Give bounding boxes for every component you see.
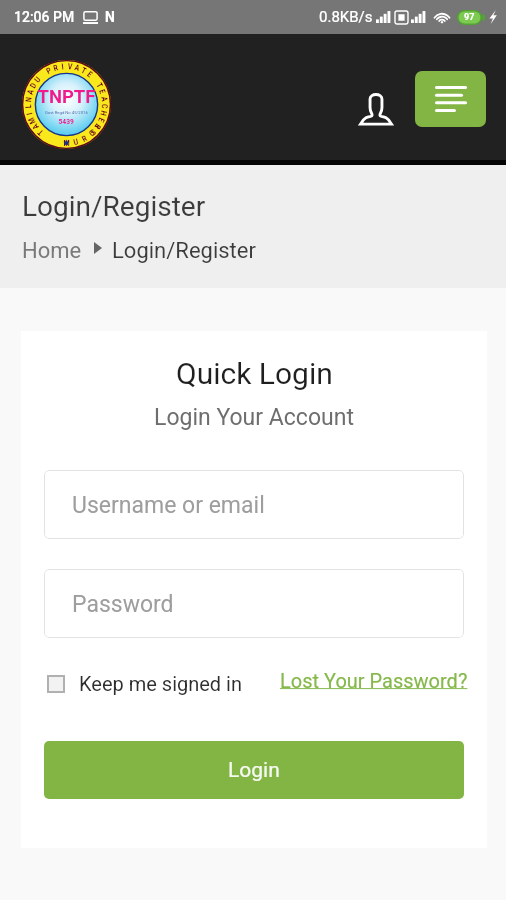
staticText: 12:06 PM xyxy=(14,9,75,25)
staticText: Username or email xyxy=(72,492,265,519)
button[interactable]: Keep me signed in xyxy=(47,672,243,695)
staticText: Login/Register xyxy=(112,238,256,264)
button[interactable]: Username or email xyxy=(44,470,464,539)
button[interactable]: Home xyxy=(22,238,82,264)
staticText: Login Your Account xyxy=(154,404,354,431)
button[interactable]: Lost Your Password? xyxy=(280,669,468,692)
button[interactable]: TNPTF Home xyxy=(22,60,111,149)
staticText: Login/Register xyxy=(22,190,206,223)
staticText: N xyxy=(105,9,115,25)
staticText: 0.8KB/s xyxy=(319,8,373,26)
button[interactable]: Menu xyxy=(415,71,486,127)
button[interactable]: Login xyxy=(44,741,464,799)
staticText: Password xyxy=(72,591,174,618)
button[interactable]: Account xyxy=(351,82,401,132)
staticText: Keep me signed in xyxy=(79,672,243,695)
button[interactable]: Password xyxy=(44,569,464,638)
staticText: Login xyxy=(228,758,280,783)
staticText: Quick Login xyxy=(176,356,333,391)
